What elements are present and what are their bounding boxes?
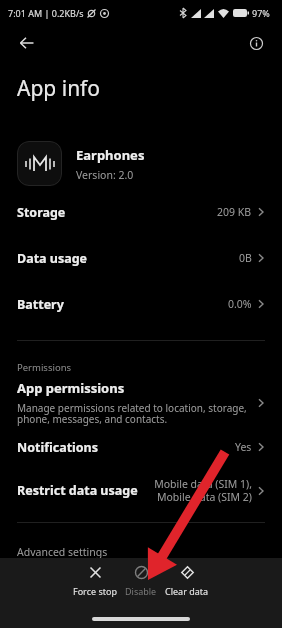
staticText: 0B <box>239 251 252 265</box>
staticText: Clear data <box>165 585 209 597</box>
staticText: 97% <box>252 7 270 19</box>
staticText: Data usage <box>17 250 88 267</box>
staticText: App info <box>17 74 101 103</box>
staticText: 7:01 AM | 0.2KB/s <box>8 7 84 19</box>
button[interactable]: Clear data <box>164 566 210 597</box>
button[interactable] <box>245 32 267 54</box>
staticText: Storage <box>17 204 66 221</box>
staticText: App permissions <box>17 379 125 397</box>
button[interactable]: Notifications <box>17 434 265 460</box>
staticText: 209 KB <box>217 205 252 219</box>
staticText: Earphones <box>76 146 145 164</box>
staticText: Advanced settings <box>17 545 108 559</box>
button[interactable]: App permissions <box>17 379 265 426</box>
button[interactable]: Data usage <box>17 235 265 281</box>
staticText: Version: 2.0 <box>76 168 134 182</box>
staticText: Battery <box>17 296 64 313</box>
button[interactable] <box>15 31 39 55</box>
staticText: Restrict data usage <box>17 482 138 499</box>
staticText: Yes <box>235 440 252 454</box>
button[interactable]: Battery <box>17 281 265 327</box>
staticText: 0.0% <box>228 297 252 311</box>
staticText: Manage permissions related to location, … <box>17 401 247 426</box>
staticText: Permissions <box>17 361 72 374</box>
button[interactable]: Storage <box>17 189 265 235</box>
staticText: Disable <box>125 585 157 597</box>
staticText: Mobile data (SIM 1), Mobile data (SIM 2) <box>154 477 252 504</box>
button[interactable]: Force stop <box>72 566 118 597</box>
button[interactable]: Earphones <box>17 141 265 186</box>
staticText: Force stop <box>73 585 117 597</box>
button[interactable]: Disable <box>118 566 164 597</box>
staticText: Notifications <box>17 439 99 456</box>
button[interactable]: Restrict data usage <box>17 477 265 504</box>
